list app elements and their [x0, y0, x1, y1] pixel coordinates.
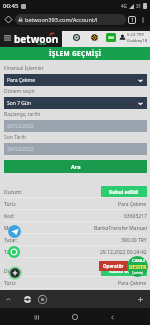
- button[interactable]: Expand toolbar: [3, 294, 13, 304]
- staticText: Gokbey18: [127, 37, 148, 43]
- staticText: DESTEK: [129, 264, 147, 271]
- button[interactable]: WhatsApp: [8, 246, 20, 258]
- staticText: Durum:: [4, 268, 22, 275]
- staticText: Son Tarih: [4, 134, 26, 141]
- staticText: betwoon: [14, 32, 59, 46]
- staticText: Durum:: [4, 189, 22, 196]
- staticText: .com: [37, 41, 47, 46]
- staticText: 00:45: [3, 2, 19, 10]
- button[interactable]: New tab: [135, 294, 145, 304]
- button[interactable]: Kabul edildi: [101, 265, 147, 277]
- button[interactable]: Home: [3, 14, 14, 25]
- staticText: Dönem seçin: [4, 88, 35, 95]
- staticText: Tutar:: [4, 237, 18, 244]
- button[interactable]: betwoon393.com/Account/l: [15, 14, 126, 25]
- staticText: BankaTransfer Manuel: [94, 225, 147, 232]
- button[interactable]: 23/12/2022: [4, 120, 147, 132]
- staticText: Para Çekme: [118, 201, 147, 208]
- staticText: 23/12/2022: [7, 123, 34, 130]
- button[interactable]: Private tabs: [37, 294, 47, 304]
- button[interactable]: More options: [138, 15, 147, 24]
- staticText: 4G: [121, 3, 127, 9]
- button[interactable]: Recent apps: [29, 310, 43, 324]
- staticText: Tarih:: [4, 249, 17, 256]
- button[interactable]: Telegram: [8, 225, 21, 238]
- button[interactable]: Live casino: [71, 32, 82, 43]
- staticText: Operatör: [103, 263, 124, 269]
- button[interactable]: 0.23 TRY: [127, 31, 150, 43]
- staticText: Ara: [71, 163, 81, 170]
- button[interactable]: Son 7 Gün: [4, 97, 147, 109]
- staticText: CANLI: [132, 258, 145, 264]
- button[interactable]: Kabul edildi: [101, 186, 147, 198]
- staticText: Kabul edildi: [109, 189, 139, 196]
- staticText: 63605217: [124, 213, 147, 220]
- staticText: Son 7 Gün: [7, 100, 32, 107]
- staticText: betwoon393.com/Account/l: [25, 16, 98, 24]
- button[interactable]: Ara: [4, 160, 147, 173]
- staticText: 29.12.2022 00:24:42: [100, 249, 147, 256]
- button[interactable]: CANLI: [127, 256, 148, 277]
- staticText: Finansal İşlemler: [4, 65, 44, 72]
- button[interactable]: 29/12/2022: [4, 143, 147, 155]
- button[interactable]: Back: [105, 310, 119, 324]
- staticText: Kod:: [4, 213, 15, 220]
- staticText: Türü:: [4, 280, 17, 287]
- button[interactable]: Tabs: [128, 16, 136, 24]
- staticText: 1: [131, 17, 134, 23]
- staticText: Para Çekme: [7, 77, 36, 84]
- staticText: Çevrimiçi: [132, 271, 144, 275]
- staticText: 29/12/2022: [7, 146, 34, 153]
- staticText: Para Çekme: [118, 280, 147, 287]
- staticText: İŞLEM GEÇMİŞİ: [49, 49, 102, 58]
- staticText: Türü:: [4, 201, 17, 208]
- staticText: 390.00 TRY: [121, 237, 147, 244]
- button[interactable]: Live support: [106, 33, 116, 42]
- staticText: Kabul edildi: [109, 268, 139, 275]
- staticText: Başlangıç tarihi: [4, 111, 41, 118]
- button[interactable]: Para Çekme: [4, 74, 147, 86]
- staticText: Metot:: [4, 225, 20, 232]
- staticText: 0.23 TRY: [127, 31, 145, 37]
- button[interactable]: Operatör: [99, 261, 128, 271]
- staticText: 31: [136, 3, 142, 9]
- button[interactable]: Home: [68, 310, 82, 324]
- button[interactable]: Tracking protection: [22, 294, 32, 304]
- button[interactable]: Menu: [1, 31, 14, 44]
- button[interactable]: More contacts: [8, 266, 22, 280]
- button[interactable]: Casino: [89, 32, 100, 43]
